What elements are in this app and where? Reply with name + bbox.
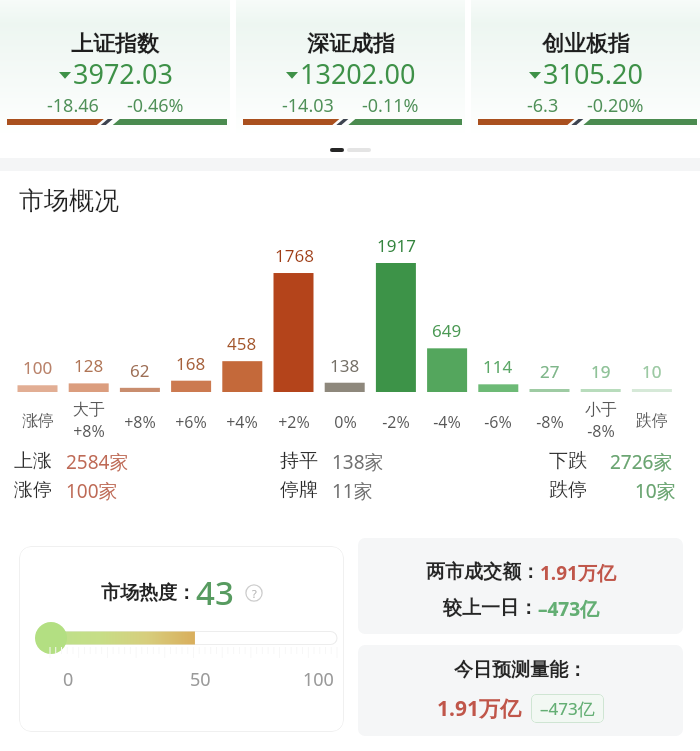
staticText: 较上一日：: [443, 596, 538, 620]
button[interactable]: 创业板指: [471, 0, 700, 133]
button[interactable]: 停牌: [280, 478, 373, 504]
staticText: -6%: [484, 411, 512, 433]
button[interactable]: 跌停: [549, 478, 676, 504]
staticText: -0.11%: [362, 93, 419, 118]
staticText: 大于: [73, 400, 105, 420]
staticText: +4%: [226, 411, 258, 433]
staticText: 2726家: [610, 449, 673, 475]
button[interactable]: 持平: [280, 449, 384, 475]
staticText: -0.20%: [587, 93, 644, 118]
staticText: 今日预测量能：: [454, 658, 587, 682]
staticText: 128: [74, 354, 104, 377]
staticText: 0: [63, 667, 74, 692]
staticText: 27: [540, 360, 560, 383]
staticText: ?: [252, 586, 257, 601]
button[interactable]: 市场热度：: [19, 546, 344, 732]
staticText: -14.03: [282, 93, 334, 118]
button[interactable]: Help about market heat: [245, 584, 263, 602]
staticText: 138家: [332, 449, 384, 475]
staticText: 两市成交额：: [426, 560, 540, 584]
staticText: -2%: [382, 411, 410, 433]
staticText: 停牌: [280, 478, 318, 502]
staticText: 小于: [585, 400, 617, 420]
staticText: 10家: [635, 478, 676, 504]
staticText: 跌停: [549, 478, 587, 502]
staticText: –473亿: [538, 596, 600, 622]
staticText: 3972.03: [73, 55, 173, 92]
staticText: +6%: [175, 411, 207, 433]
staticText: 10: [642, 360, 662, 383]
staticText: +8%: [73, 420, 105, 442]
staticText: 11家: [332, 478, 373, 504]
button[interactable]: 深证成指: [236, 0, 465, 133]
staticText: 1.91万亿: [437, 694, 521, 723]
staticText: 100: [303, 667, 334, 692]
staticText: 0%: [334, 411, 357, 433]
staticText: 114: [483, 355, 513, 378]
staticText: 1768: [275, 244, 314, 267]
staticText: 涨停: [14, 478, 52, 502]
staticText: 100家: [66, 478, 118, 504]
staticText: +2%: [278, 411, 310, 433]
staticText: 跌停: [636, 411, 668, 431]
staticText: 深证成指: [307, 30, 395, 58]
staticText: 19: [591, 360, 611, 383]
staticText: 持平: [280, 449, 318, 473]
staticText: 138: [330, 354, 360, 377]
staticText: -4%: [433, 411, 461, 433]
button[interactable]: 今日预测量能：: [358, 645, 683, 736]
button[interactable]: 涨停: [14, 478, 118, 504]
staticText: 1917: [377, 234, 416, 257]
staticText: 13202.00: [300, 55, 416, 92]
button[interactable]: 上涨: [14, 449, 129, 475]
staticText: -6.3: [527, 93, 559, 118]
staticText: 50: [190, 667, 211, 692]
staticText: 市场热度：: [101, 581, 196, 605]
staticText: 168: [176, 352, 206, 375]
staticText: –473亿: [540, 697, 595, 720]
staticText: 上涨: [14, 449, 52, 473]
staticText: -18.46: [47, 93, 99, 118]
staticText: -0.46%: [127, 93, 184, 118]
staticText: 1.91万亿: [540, 560, 616, 586]
staticText: 2584家: [66, 449, 129, 475]
staticText: +8%: [124, 411, 156, 433]
staticText: 3105.20: [543, 55, 643, 92]
staticText: 649: [432, 319, 462, 342]
staticText: 100: [23, 356, 53, 379]
staticText: 43: [196, 570, 234, 615]
staticText: 458: [227, 332, 257, 355]
staticText: -8%: [587, 420, 615, 442]
button[interactable]: 上证指数: [0, 0, 230, 133]
staticText: 上证指数: [71, 30, 159, 58]
staticText: -8%: [536, 411, 564, 433]
staticText: 市场概况: [19, 185, 119, 216]
button[interactable]: 两市成交额：: [358, 538, 683, 634]
staticText: 62: [130, 359, 150, 382]
button[interactable]: 下跌: [549, 449, 673, 475]
staticText: 创业板指: [542, 30, 630, 58]
staticText: 涨停: [22, 411, 54, 431]
staticText: 下跌: [549, 449, 587, 473]
